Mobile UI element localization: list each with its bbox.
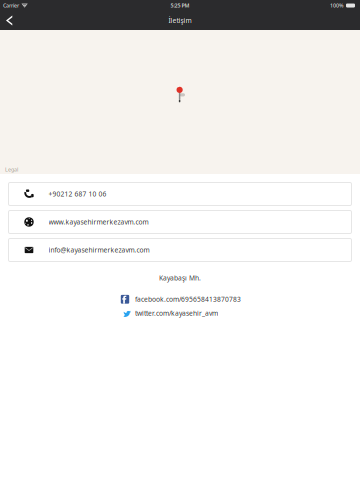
staticText: Legal (5, 166, 18, 173)
button[interactable]: twitter.com/kayasehir_avm (0, 309, 360, 318)
staticText: twitter.com/kayasehir_avm (135, 309, 218, 318)
button[interactable]: info@kayasehirmerkezavm.com (8, 238, 352, 262)
staticText: info@kayasehirmerkezavm.com (48, 246, 149, 254)
staticText: Kayabaşı Mh. (159, 273, 201, 282)
button[interactable]: +90212 687 10 06 (8, 182, 352, 206)
button[interactable]: www.kayasehirmerkezavm.com (8, 210, 352, 234)
staticText: İletişim (168, 16, 191, 25)
button[interactable]: Back (0, 11, 21, 29)
staticText: www.kayasehirmerkezavm.com (48, 218, 148, 226)
staticText: Carrier (3, 2, 19, 9)
button[interactable]: facebook.com/695658413870783 (0, 295, 360, 304)
staticText: 5:25 PM (170, 2, 189, 9)
staticText: +90212 687 10 06 (48, 190, 106, 198)
staticText: 100% (330, 2, 344, 9)
staticText: facebook.com/695658413870783 (135, 295, 241, 304)
